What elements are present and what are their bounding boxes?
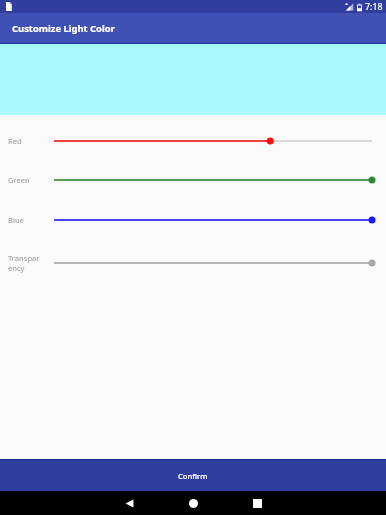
staticText: ency xyxy=(8,263,25,273)
button[interactable]: Back xyxy=(117,491,141,515)
button[interactable]: Home xyxy=(181,491,205,515)
button[interactable]: Recent apps xyxy=(245,491,269,515)
staticText: Transpar xyxy=(8,253,40,263)
staticText: Confirm xyxy=(178,471,208,481)
staticText: Green xyxy=(8,175,30,185)
staticText: Customize Light Color xyxy=(12,22,115,35)
button[interactable]: Confirm xyxy=(0,460,386,491)
button[interactable]: Green xyxy=(0,160,386,199)
staticText: Red xyxy=(8,136,22,146)
staticText: Blue xyxy=(8,215,24,225)
button[interactable]: Red xyxy=(0,121,386,160)
button[interactable]: Blue xyxy=(0,199,386,240)
button[interactable]: Transpar xyxy=(0,240,386,286)
staticText: 7:18 xyxy=(365,1,383,13)
